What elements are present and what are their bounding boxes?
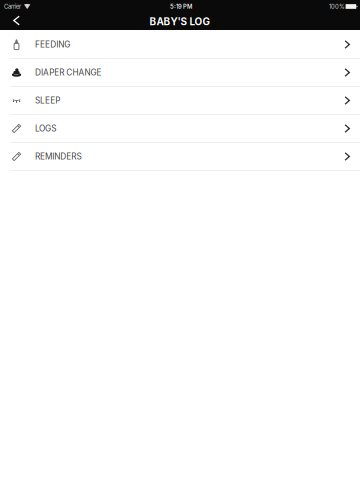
- button[interactable]: REMINDERS: [0, 143, 360, 171]
- staticText: Carrier: [4, 3, 21, 10]
- staticText: SLEEP: [35, 95, 60, 105]
- staticText: BABY'S LOG: [149, 15, 210, 28]
- staticText: LOGS: [35, 123, 56, 133]
- button[interactable]: LOGS: [0, 115, 360, 143]
- staticText: DIAPER CHANGE: [35, 67, 102, 77]
- button[interactable]: Back: [0, 13, 33, 30]
- button[interactable]: DIAPER CHANGE: [0, 59, 360, 87]
- staticText: 100%: [329, 3, 345, 10]
- staticText: FEEDING: [35, 39, 70, 49]
- button[interactable]: SLEEP: [0, 87, 360, 115]
- staticText: REMINDERS: [35, 151, 81, 161]
- staticText: 5:19 PM: [170, 3, 192, 10]
- button[interactable]: FEEDING: [0, 31, 360, 59]
